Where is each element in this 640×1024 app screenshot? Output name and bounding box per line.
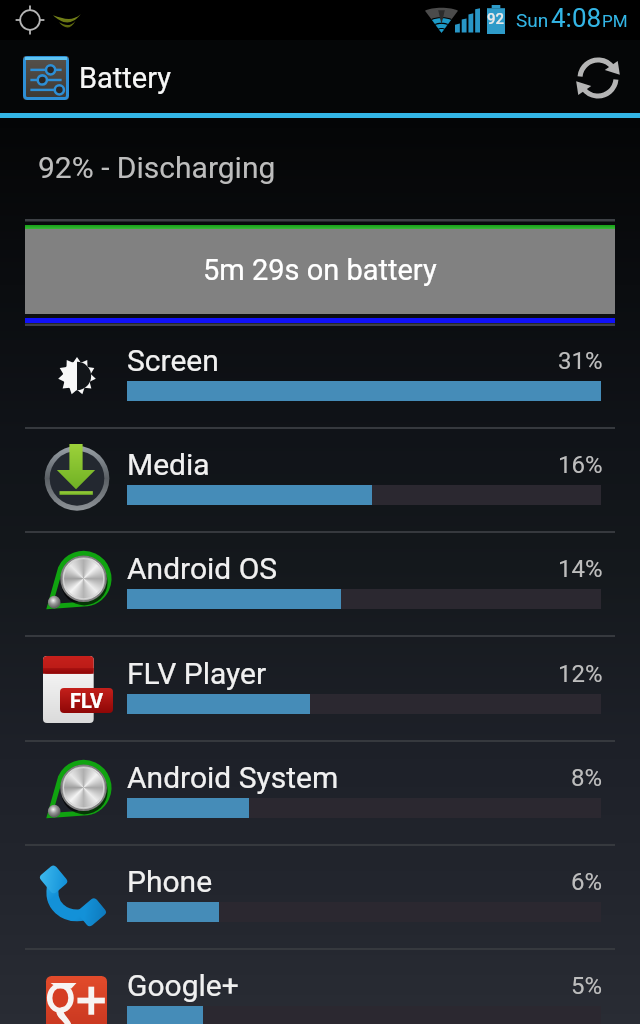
button[interactable]: Settings [23,56,69,100]
staticText: Google+ [127,968,239,1003]
staticText: Battery [79,61,171,95]
button[interactable]: Phone [0,846,640,950]
staticText: 5m 29s on battery [203,253,437,287]
button[interactable]: Screen [0,325,640,429]
staticText: PM [602,11,628,31]
staticText: 5% [571,972,603,1000]
staticText: 92% - Discharging [38,150,276,185]
staticText: FLV [70,689,103,712]
staticText: 14% [558,555,603,583]
staticText: 6% [571,868,603,896]
staticText: Screen [127,343,219,378]
staticText: Android System [127,760,339,795]
staticText: Phone [127,864,213,899]
staticText: 92 [487,10,505,28]
staticText: 8% [571,764,603,792]
button[interactable]: Refresh [574,54,622,102]
button[interactable]: Android System [0,742,640,846]
staticText: 12% [558,660,603,688]
button[interactable]: FLV [0,638,640,742]
button[interactable]: Google+ [0,950,640,1024]
staticText: FLV Player [127,656,267,691]
staticText: Media [127,447,210,482]
button[interactable]: Media [0,429,640,533]
button[interactable]: Android OS [0,533,640,637]
staticText: 31% [558,347,603,375]
staticText: 16% [558,451,603,479]
staticText: Android OS [127,551,278,586]
staticText: Sun [516,9,549,31]
staticText: 4:08 [551,3,602,33]
